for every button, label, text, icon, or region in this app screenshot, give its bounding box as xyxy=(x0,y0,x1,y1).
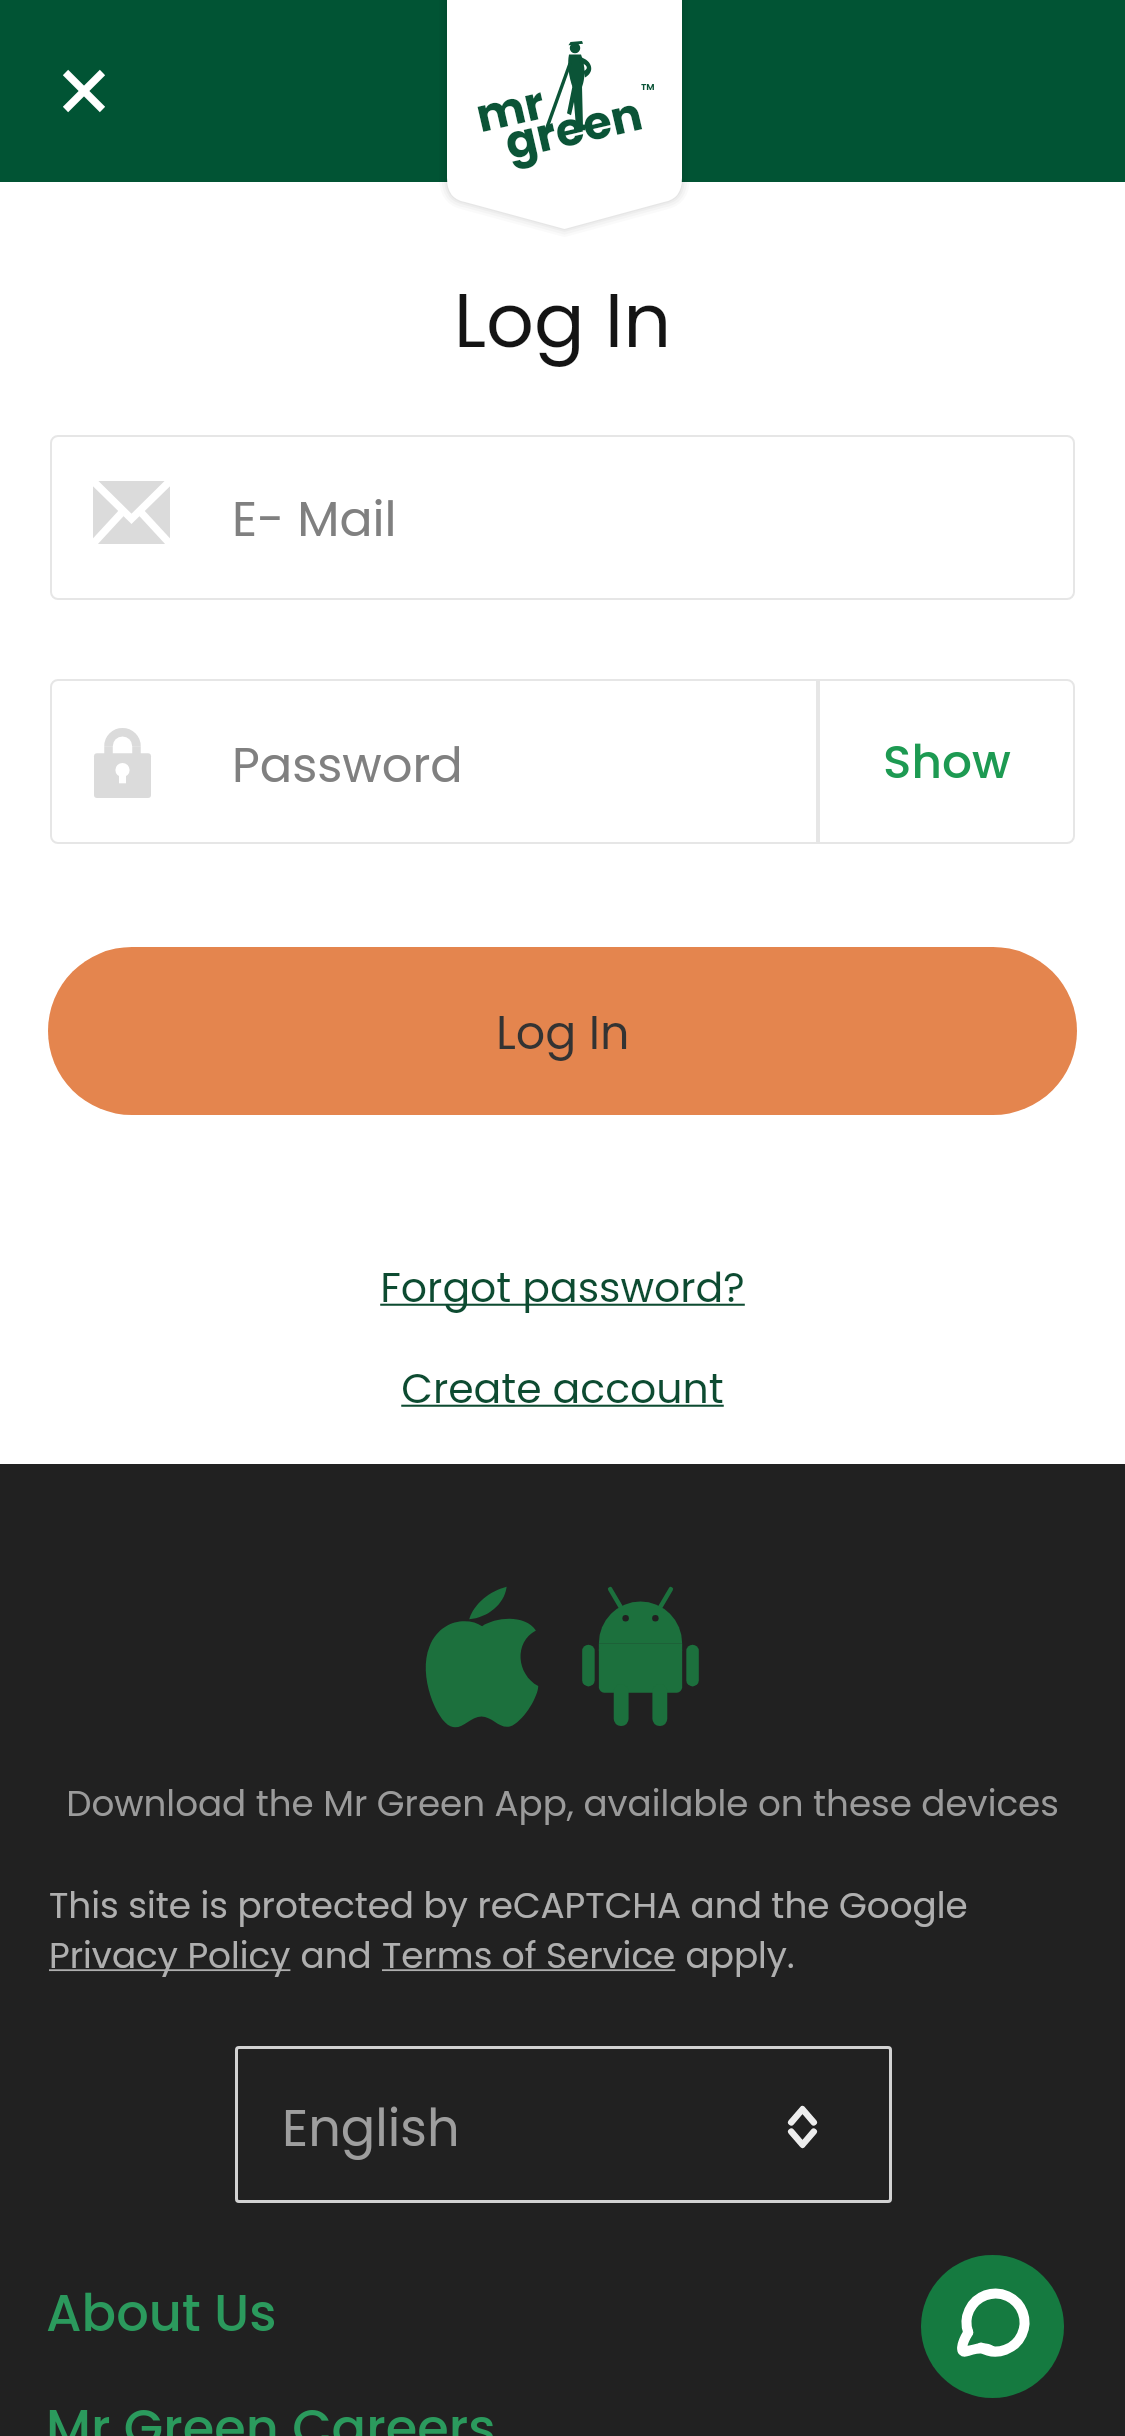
staticText: Log In xyxy=(496,1001,630,1065)
staticText: green xyxy=(499,82,649,175)
button[interactable]: Password xyxy=(50,679,818,844)
button[interactable]: Forgot password? xyxy=(370,1247,755,1328)
staticText: mr xyxy=(470,70,551,148)
button[interactable]: Chat xyxy=(921,2255,1064,2398)
staticText: apply. xyxy=(676,1930,795,1980)
staticText: Download the Mr Green App, available on … xyxy=(0,1779,1125,1829)
button[interactable]: Create account xyxy=(391,1348,734,1429)
button[interactable]: Terms of Service xyxy=(382,1930,676,1980)
staticText: This site is protected by reCAPTCHA and … xyxy=(49,1880,968,1930)
staticText: E- Mail xyxy=(232,485,397,554)
button[interactable]: English xyxy=(235,2046,892,2203)
staticText: Show xyxy=(883,729,1011,795)
button[interactable]: Show xyxy=(818,679,1075,844)
button[interactable]: Close xyxy=(24,31,144,151)
staticText: and xyxy=(291,1930,382,1980)
staticText: Password xyxy=(232,732,463,799)
button[interactable]: Privacy Policy xyxy=(49,1930,291,1980)
staticText: TM xyxy=(641,81,655,94)
staticText: English xyxy=(282,2092,460,2163)
button[interactable]: E- Mail xyxy=(50,435,1075,600)
staticText: Log In xyxy=(0,268,1125,373)
button[interactable]: Mr Green Careers xyxy=(46,2392,496,2436)
button[interactable]: About Us xyxy=(46,2277,277,2348)
button[interactable]: Log In xyxy=(48,947,1077,1115)
